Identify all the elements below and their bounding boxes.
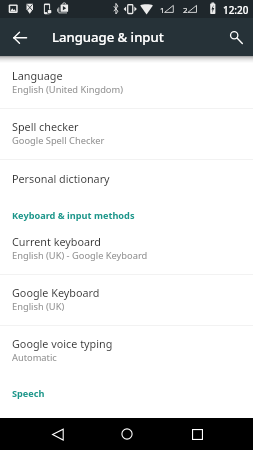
staticText: English (United Kingdom) bbox=[12, 83, 123, 96]
staticText: 1 bbox=[160, 5, 165, 16]
staticText: Automatic bbox=[12, 351, 57, 364]
button[interactable]: Home bbox=[110, 418, 144, 450]
button[interactable]: Spell checker bbox=[0, 109, 253, 160]
button[interactable]: Language bbox=[0, 58, 253, 109]
button[interactable]: Personal dictionary bbox=[0, 160, 253, 199]
staticText: Personal dictionary bbox=[12, 171, 110, 186]
staticText: Language & input bbox=[52, 28, 164, 46]
staticText: English (UK) - Google Keyboard bbox=[12, 249, 148, 262]
staticText: Spell checker bbox=[12, 119, 79, 134]
staticText: Current keyboard bbox=[12, 234, 101, 249]
staticText: English (UK) bbox=[12, 300, 65, 313]
button[interactable]: Current keyboard bbox=[0, 224, 253, 275]
staticText: Language bbox=[12, 68, 63, 83]
button[interactable]: Back bbox=[40, 418, 74, 450]
staticText: 12:20 bbox=[223, 3, 249, 16]
staticText: 2 bbox=[183, 5, 188, 16]
button[interactable]: Navigate up bbox=[0, 18, 40, 56]
staticText: Google Keyboard bbox=[12, 285, 100, 300]
staticText: Google Spell Checker bbox=[12, 134, 105, 147]
button[interactable]: Recent apps bbox=[180, 418, 214, 450]
staticText: Keyboard & input methods bbox=[12, 209, 135, 222]
button[interactable]: Google Keyboard bbox=[0, 275, 253, 326]
staticText: Speech bbox=[12, 387, 45, 400]
button[interactable]: Search bbox=[217, 18, 253, 56]
button[interactable]: Google voice typing bbox=[0, 326, 253, 377]
staticText: Google voice typing bbox=[12, 336, 113, 351]
